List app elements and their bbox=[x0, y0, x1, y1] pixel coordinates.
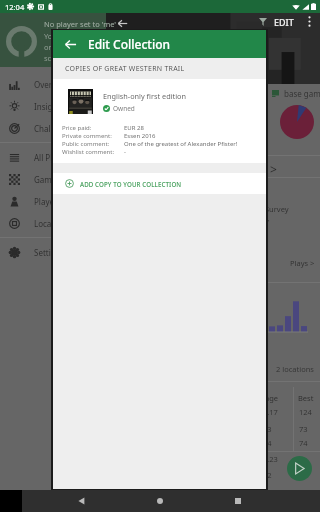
staticText: base game bbox=[284, 88, 320, 99]
staticText: 12:04 bbox=[5, 2, 25, 12]
staticText: 2 locations bbox=[276, 364, 314, 374]
staticText: 73 bbox=[263, 424, 272, 434]
staticText: All Plays bbox=[34, 152, 65, 163]
staticText: Wishlist comment: bbox=[62, 148, 124, 156]
button[interactable]: Players bbox=[0, 190, 106, 212]
staticText: 74 bbox=[263, 438, 272, 448]
staticText: One of the greatest of Alexander Pfister… bbox=[124, 140, 238, 148]
staticText: rage bbox=[262, 393, 278, 403]
staticText: Players bbox=[34, 196, 62, 207]
button[interactable]: Challenges bbox=[0, 117, 106, 139]
staticText: Private comment: bbox=[62, 132, 124, 140]
button[interactable]: Back bbox=[78, 497, 86, 505]
button[interactable]: Home bbox=[157, 498, 163, 504]
button[interactable]: Games bbox=[0, 168, 106, 190]
button[interactable]: Start play bbox=[287, 456, 312, 481]
staticText: Locations bbox=[34, 218, 70, 229]
staticText: Price paid: bbox=[62, 124, 124, 132]
button[interactable]: Settings bbox=[0, 241, 106, 263]
staticText: Plays > bbox=[290, 258, 315, 268]
staticText: scre bbox=[44, 53, 59, 63]
staticText: You c bbox=[44, 31, 63, 41]
staticText: Challenges bbox=[34, 123, 76, 134]
button[interactable]: Locations bbox=[0, 212, 106, 234]
staticText: Overview bbox=[34, 79, 69, 90]
staticText: Insights bbox=[34, 101, 65, 112]
staticText: Best bbox=[298, 393, 314, 403]
button[interactable]: Back bbox=[58, 32, 82, 56]
staticText: - bbox=[124, 148, 126, 156]
staticText: Settings bbox=[34, 247, 65, 258]
button[interactable]: All Plays bbox=[0, 146, 106, 168]
staticText: Public comment: bbox=[62, 140, 124, 148]
staticText: English-only first edition bbox=[103, 91, 186, 101]
staticText: 52 bbox=[263, 470, 272, 480]
button[interactable]: Overview bbox=[0, 73, 106, 95]
button[interactable]: ADD COPY TO YOUR COLLECTION bbox=[53, 173, 266, 194]
staticText: No player set to 'me' bbox=[44, 19, 117, 29]
staticText: Games bbox=[34, 174, 61, 185]
staticText: 73 bbox=[299, 424, 308, 434]
button[interactable]: Insights bbox=[0, 95, 106, 117]
staticText: EDIT bbox=[274, 16, 294, 28]
staticText: EUR 28 bbox=[124, 124, 144, 132]
staticText: 124 bbox=[299, 407, 312, 417]
staticText: 74 bbox=[299, 438, 308, 448]
staticText: 5.23 bbox=[263, 454, 278, 464]
staticText: on th bbox=[44, 42, 63, 52]
staticText: COPIES OF GREAT WESTERN TRAIL bbox=[65, 64, 185, 74]
staticText: ADD COPY TO YOUR COLLECTION bbox=[80, 180, 182, 188]
staticText: Survey bbox=[265, 204, 289, 214]
staticText: > bbox=[270, 161, 277, 177]
staticText: 0.17 bbox=[263, 407, 278, 417]
staticText: Essen 2016 bbox=[124, 132, 156, 140]
staticText: Edit Collection bbox=[88, 36, 170, 52]
staticText: y bbox=[265, 216, 269, 226]
staticText: Owned bbox=[113, 104, 135, 113]
